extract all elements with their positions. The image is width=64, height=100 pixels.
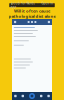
button[interactable]: Previous chapter [14,95,17,97]
button[interactable]: Next chapter [47,95,50,97]
button[interactable]: Notes [34,21,36,23]
staticText: pathological diet alone [8,13,55,19]
staticText: Speech for Words · Open in app [10,2,53,9]
staticText: Will it often cause [14,8,50,13]
button[interactable]: Play [29,93,35,99]
button[interactable]: Search [28,21,30,23]
button[interactable]: Speech for Words · Open in app [9,3,55,7]
